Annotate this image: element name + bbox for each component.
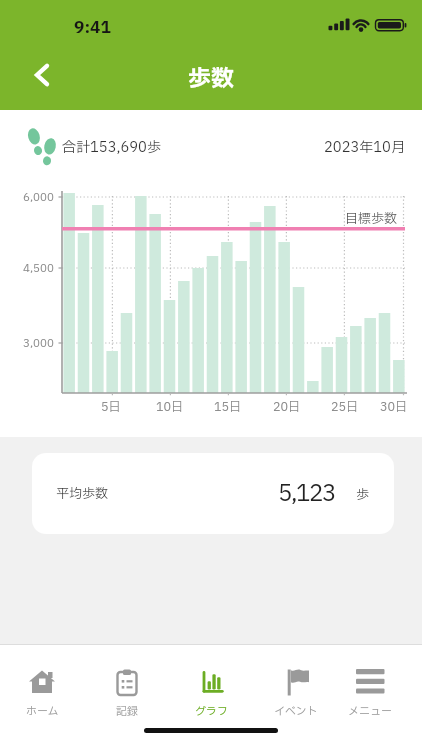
staticText: 20日 — [273, 398, 301, 412]
staticText: 5日 — [101, 398, 121, 412]
staticText: 5,123 — [278, 477, 335, 511]
button[interactable]: ホーム — [0, 645, 84, 750]
staticText: 歩数 — [188, 62, 234, 96]
staticText: 15日 — [214, 398, 242, 412]
button[interactable]: 記録 — [85, 645, 169, 750]
staticText: 合計153,690歩 — [62, 137, 161, 158]
staticText: 6,000 — [23, 189, 54, 206]
staticText: ホーム — [26, 703, 59, 720]
staticText: 記録 — [116, 703, 138, 720]
staticText: 平均歩数 — [56, 484, 109, 503]
staticText: 25日 — [331, 398, 359, 412]
staticText: 9:41 — [74, 16, 111, 41]
button[interactable]: グラフ — [169, 645, 253, 750]
staticText: 歩 — [356, 485, 370, 504]
button[interactable]: 平均歩数 — [32, 453, 394, 534]
staticText: メニュー — [348, 703, 392, 720]
staticText: 3,000 — [23, 335, 54, 352]
staticText: 30日 — [380, 398, 408, 412]
staticText: グラフ — [195, 703, 228, 720]
staticText: イベント — [274, 703, 318, 720]
staticText: 2023年10月 — [324, 137, 405, 158]
button[interactable] — [24, 57, 60, 93]
staticText: 4,500 — [23, 260, 54, 277]
button[interactable]: メニュー — [328, 645, 412, 750]
staticText: 目標歩数 — [345, 209, 398, 228]
button[interactable]: イベント — [254, 645, 338, 750]
staticText: 10日 — [156, 398, 184, 412]
